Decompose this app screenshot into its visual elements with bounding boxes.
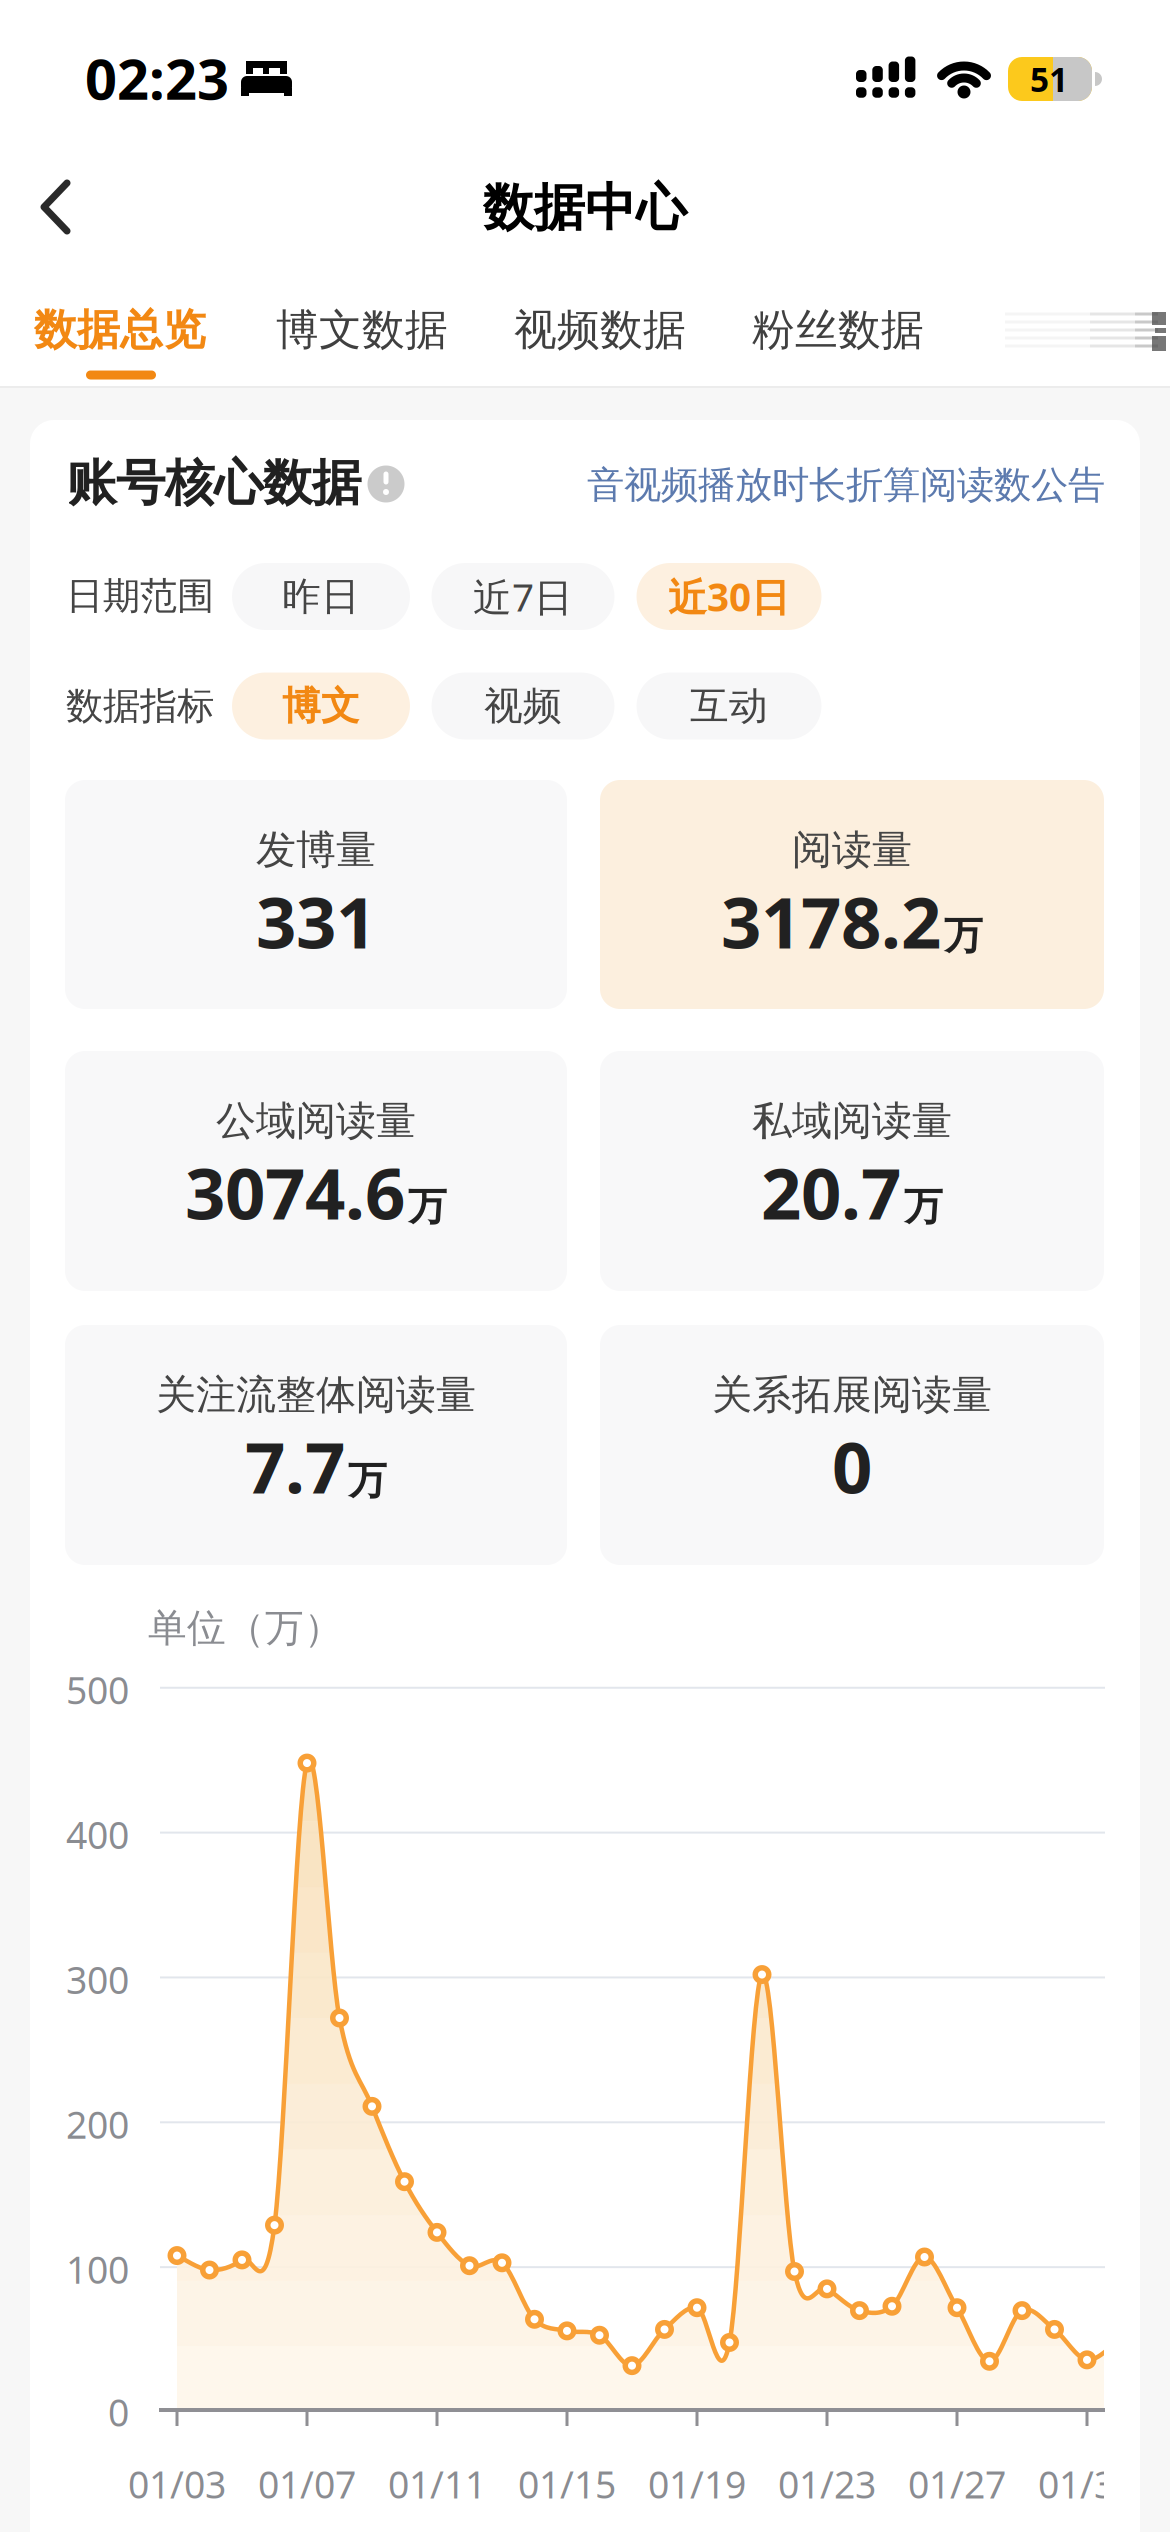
staticText: 万 (408, 1183, 447, 1230)
staticText: 500 (66, 1665, 129, 1715)
staticText: 01/19 (648, 2459, 746, 2509)
staticText: 发博量 (256, 825, 376, 874)
button[interactable]: 互动 (636, 672, 821, 739)
staticText: 100 (66, 2244, 129, 2294)
staticText: 01/31 (1038, 2459, 1136, 2509)
staticText: 单位（万） (148, 1604, 343, 1652)
staticText: 01/03 (128, 2459, 226, 2509)
button[interactable]: 博文 (232, 672, 410, 739)
staticText: 日期范围 (66, 573, 214, 619)
staticText: 3074.6 (185, 1145, 405, 1239)
staticText: 02:23 (85, 41, 229, 115)
staticText: 数据指标 (66, 683, 214, 729)
staticText: 7.7 (245, 1419, 345, 1513)
button[interactable]: 阅读量 (600, 780, 1104, 1009)
button[interactable]: 博文数据 (276, 304, 448, 356)
button[interactable]: 近7日 (431, 563, 614, 630)
button[interactable]: 发博量 (65, 780, 567, 1009)
staticText: 300 (66, 1955, 129, 2004)
staticText: 粉丝数据 (752, 304, 924, 356)
staticText: 0 (832, 1419, 872, 1513)
staticText: 01/23 (778, 2459, 876, 2509)
staticText: 关注流整体阅读量 (156, 1370, 476, 1419)
staticText: 0 (108, 2387, 129, 2437)
staticText: 01/11 (388, 2459, 486, 2509)
staticText: 近7日 (473, 571, 573, 622)
staticText: 万 (944, 912, 983, 959)
staticText: 万 (348, 1457, 387, 1504)
staticText: 01/07 (258, 2459, 356, 2509)
button[interactable] (11, 174, 77, 240)
button[interactable]: 关系拓展阅读量 (600, 1325, 1104, 1565)
button[interactable]: 近30日 (636, 563, 821, 630)
button[interactable]: 视频 (431, 672, 614, 739)
staticText: 万 (904, 1183, 943, 1230)
button[interactable]: 粉丝数据 (752, 304, 924, 356)
button[interactable]: 关注流整体阅读量 (65, 1325, 567, 1565)
staticText: 博文数据 (276, 304, 448, 356)
staticText: 博文 (282, 682, 360, 730)
staticText: 01/27 (908, 2459, 1006, 2509)
staticText: 近30日 (668, 571, 790, 622)
staticText: 400 (66, 1810, 129, 1859)
staticText: 视频 (484, 682, 562, 730)
button[interactable]: 私域阅读量 (600, 1051, 1104, 1291)
staticText: 01/15 (518, 2459, 616, 2509)
staticText: 互动 (690, 682, 768, 730)
button[interactable]: 昨日 (232, 563, 410, 630)
staticText: 公域阅读量 (216, 1096, 416, 1145)
button[interactable]: 数据总览 (34, 304, 206, 356)
staticText: 3178.2 (721, 874, 941, 968)
staticText: 账号核心数据 (67, 453, 361, 513)
staticText: 数据总览 (34, 304, 206, 356)
staticText: 视频数据 (514, 304, 686, 356)
staticText: 200 (66, 2099, 129, 2149)
staticText: 昨日 (282, 573, 360, 620)
staticText: 331 (256, 874, 376, 968)
staticText: 音视频播放时长折算阅读数公告 (587, 462, 1105, 508)
staticText: 阅读量 (792, 825, 912, 874)
staticText: 20.7 (761, 1145, 901, 1239)
staticText: 关系拓展阅读量 (712, 1370, 992, 1419)
button[interactable]: 音视频播放时长折算阅读数公告 (587, 462, 1105, 508)
staticText: 数据中心 (483, 177, 687, 239)
staticText: 51 (1030, 57, 1068, 101)
button[interactable]: 公域阅读量 (65, 1051, 567, 1291)
staticText: 私域阅读量 (752, 1096, 952, 1145)
button[interactable]: 视频数据 (514, 304, 686, 356)
